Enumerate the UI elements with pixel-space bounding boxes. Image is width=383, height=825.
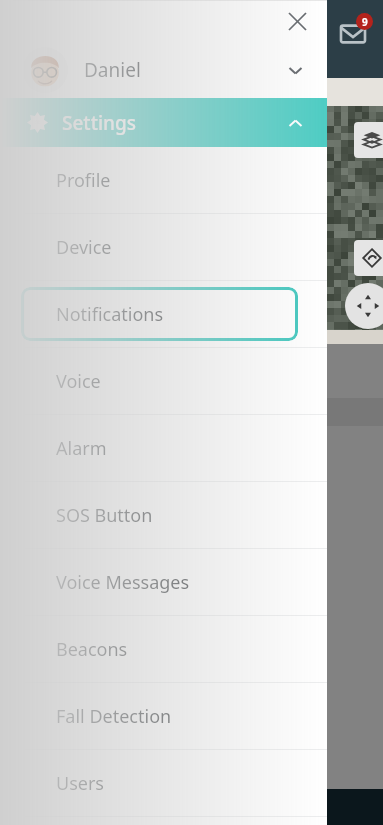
staticText: Profile (56, 168, 111, 193)
button[interactable]: Daniel (0, 41, 327, 98)
staticText: Notifications (56, 302, 164, 327)
button[interactable]: Notifications (0, 281, 327, 347)
staticText: Beacons (56, 637, 128, 662)
staticText: Voice (56, 369, 101, 394)
button[interactable]: Voice (0, 348, 327, 414)
button[interactable]: Profile (0, 147, 327, 213)
staticText: Settings (62, 110, 136, 136)
button[interactable]: Fall Detection (0, 683, 327, 749)
button[interactable]: Voice Messages (0, 549, 327, 615)
staticText: SOS Button (56, 503, 153, 528)
staticText: Voice Messages (56, 570, 190, 595)
button[interactable]: Settings (0, 98, 327, 147)
button[interactable]: SOS Button (0, 482, 327, 548)
button[interactable]: Map control (354, 122, 383, 158)
button[interactable]: Open item (327, 344, 383, 404)
staticText: Daniel (84, 57, 141, 83)
button[interactable]: Beacons (0, 616, 327, 682)
button[interactable]: Device (0, 214, 327, 280)
staticText: Alarm (56, 436, 107, 461)
staticText: Device (56, 235, 112, 260)
button[interactable]: Alarm (0, 415, 327, 481)
button[interactable]: Pan map (345, 283, 383, 329)
button[interactable]: Map control (354, 240, 383, 276)
button[interactable]: Users (0, 750, 327, 816)
staticText: Fall Detection (56, 704, 172, 729)
staticText: Users (56, 771, 104, 796)
staticText: 9 (362, 15, 368, 29)
button[interactable]: Close (280, 4, 314, 38)
